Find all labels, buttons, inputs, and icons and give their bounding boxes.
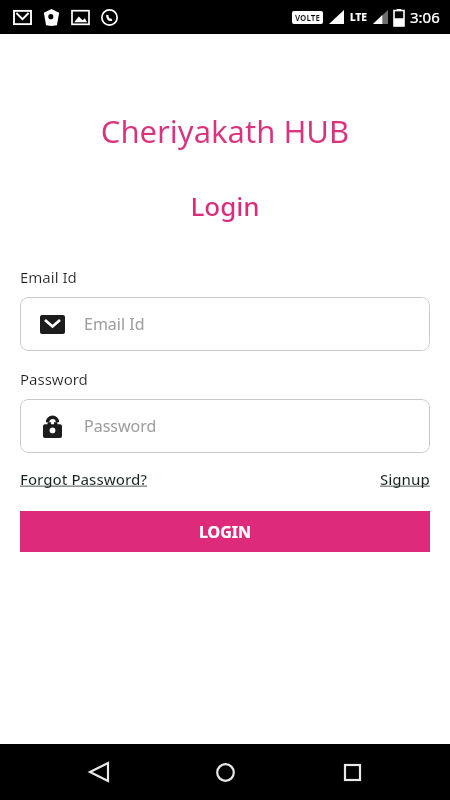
button[interactable]: Home (197, 744, 253, 800)
button[interactable]: Back (71, 744, 127, 800)
staticText: LTE (350, 10, 367, 24)
staticText: Login (0, 188, 450, 223)
staticText: Email Id (84, 313, 145, 335)
button[interactable]: Email Id (20, 297, 430, 351)
button[interactable]: Recent apps (324, 744, 380, 800)
staticText: Signup (380, 469, 430, 489)
staticText: Forgot Password? (20, 469, 148, 489)
staticText: Password (84, 415, 157, 437)
staticText: Email Id (20, 267, 77, 287)
staticText: Cheriyakath HUB (0, 110, 450, 152)
staticText: LOGIN (199, 521, 252, 543)
staticText: 3:06 (410, 7, 440, 27)
staticText: VOLTE (295, 12, 320, 23)
staticText: Password (20, 369, 88, 389)
button[interactable]: Password (20, 399, 430, 453)
button[interactable]: LOGIN (20, 511, 430, 552)
button[interactable]: Signup (380, 469, 430, 489)
button[interactable]: Forgot Password? (20, 469, 148, 489)
